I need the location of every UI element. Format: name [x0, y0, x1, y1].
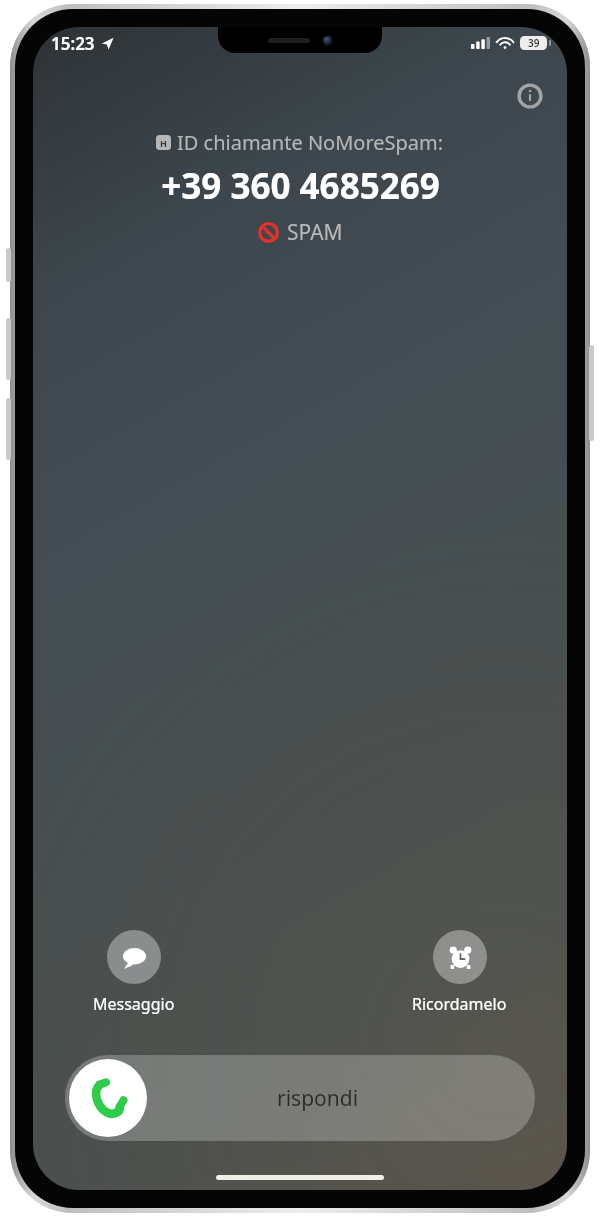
button[interactable]: Messaggio	[89, 928, 179, 1017]
staticText: +39 360 4685269	[161, 162, 440, 210]
staticText: 39	[528, 36, 540, 50]
button[interactable]: Ricordamelo	[408, 928, 511, 1017]
button[interactable]: Scorri per rispondere	[65, 1055, 535, 1141]
staticText: Messaggio	[93, 993, 175, 1015]
staticText: SPAM	[287, 218, 343, 247]
staticText: ID chiamante NoMoreSpam:	[177, 129, 444, 156]
staticText: H	[160, 137, 167, 149]
staticText: Ricordamelo	[412, 993, 507, 1015]
button[interactable]: Informazioni chiamata	[515, 81, 545, 111]
staticText: 15:23	[51, 32, 95, 55]
staticText: rispondi	[277, 1084, 359, 1113]
button[interactable]: Rispondi	[69, 1059, 147, 1137]
